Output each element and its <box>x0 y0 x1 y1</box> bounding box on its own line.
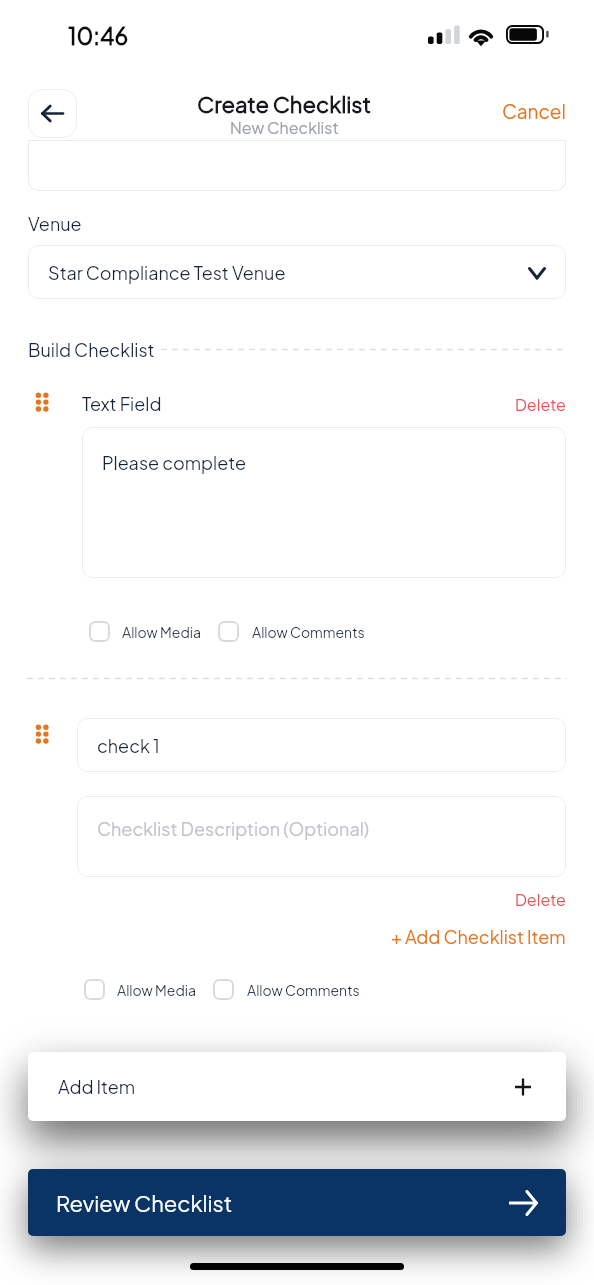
staticText: Allow Media <box>122 623 201 641</box>
button[interactable]: + Add Checklist Item <box>391 925 594 948</box>
button[interactable]: Reorder item <box>33 392 51 416</box>
staticText: + Add Checklist Item <box>391 925 566 948</box>
button[interactable]: Allow comments <box>218 621 239 642</box>
button[interactable]: Cancel <box>502 99 594 123</box>
staticText: Text Field <box>82 392 162 415</box>
button[interactable]: Please complete <box>82 427 566 578</box>
button[interactable]: Delete <box>515 394 594 414</box>
button[interactable]: Star Compliance Test Venue <box>28 245 566 299</box>
button[interactable]: Allow media <box>89 621 110 642</box>
staticText: Review Checklist <box>56 1189 233 1217</box>
other: Add item <box>514 1078 532 1096</box>
staticText: Allow Media <box>117 981 196 999</box>
staticText: Venue <box>28 212 82 235</box>
staticText: Checklist Description (Optional) <box>97 817 370 840</box>
other: Choose venue <box>526 265 546 279</box>
staticText: New Checklist <box>230 117 339 137</box>
button[interactable]: Add Item <box>28 1052 566 1121</box>
button[interactable]: Allow media <box>84 979 105 1000</box>
staticText: 10:46 <box>68 21 129 50</box>
staticText: Add Item <box>58 1075 136 1098</box>
button[interactable]: Back <box>28 89 77 138</box>
staticText: Delete <box>515 889 566 909</box>
staticText: check 1 <box>97 734 160 757</box>
staticText: Cancel <box>502 99 566 123</box>
staticText: Delete <box>515 394 566 414</box>
staticText: Create Checklist <box>197 90 372 118</box>
staticText: Allow Comments <box>252 623 365 641</box>
button[interactable]: Allow comments <box>213 979 234 1000</box>
other: Continue <box>508 1190 540 1216</box>
staticText: Star Compliance Test Venue <box>48 261 526 284</box>
staticText: Allow Comments <box>247 981 360 999</box>
button[interactable]: Checklist Description (Optional) <box>77 796 566 877</box>
staticText: Please complete <box>102 451 246 474</box>
staticText: Build Checklist <box>28 338 155 361</box>
button[interactable]: Delete <box>515 889 594 909</box>
button[interactable]: Reorder item <box>33 724 51 748</box>
button[interactable]: check 1 <box>77 718 566 772</box>
button[interactable]: Review Checklist <box>28 1169 566 1236</box>
